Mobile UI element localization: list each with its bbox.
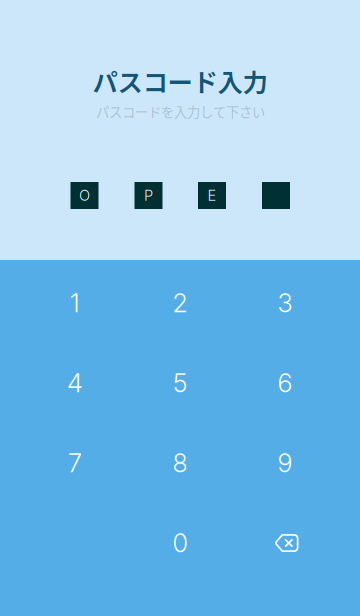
- staticText: パスコードを入力して下さい: [96, 102, 265, 121]
- staticText: 7: [68, 448, 82, 478]
- button[interactable]: 0: [127, 503, 232, 583]
- button[interactable]: Delete: [234, 503, 339, 583]
- staticText: P: [144, 187, 153, 204]
- staticText: 5: [173, 368, 187, 398]
- staticText: 9: [277, 448, 292, 478]
- staticText: 4: [67, 368, 83, 398]
- staticText: 6: [277, 368, 292, 398]
- staticText: O: [79, 187, 90, 204]
- staticText: 1: [70, 288, 80, 318]
- staticText: パスコード入力: [92, 63, 267, 99]
- staticText: 0: [172, 528, 187, 558]
- staticText: 2: [172, 288, 187, 318]
- button[interactable]: 5: [127, 343, 232, 423]
- button[interactable]: 3: [232, 263, 337, 343]
- staticText: 3: [277, 288, 292, 318]
- staticText: E: [207, 187, 216, 204]
- button[interactable]: 4: [22, 343, 127, 423]
- button[interactable]: 8: [127, 423, 232, 503]
- staticText: 8: [172, 448, 187, 478]
- button[interactable]: 1: [22, 263, 127, 343]
- button[interactable]: 9: [232, 423, 337, 503]
- button[interactable]: 2: [127, 263, 232, 343]
- button[interactable]: 7: [22, 423, 127, 503]
- button[interactable]: 6: [232, 343, 337, 423]
